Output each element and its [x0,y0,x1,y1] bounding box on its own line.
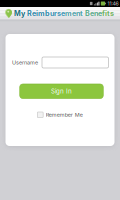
staticText: Reimb [27,9,50,18]
staticText: ment [65,9,85,18]
staticText: Username [12,59,38,66]
staticText: My [14,9,27,18]
staticText: Sign In [51,87,72,95]
staticText: fits [102,9,114,18]
staticText: urse [50,9,65,18]
staticText: 11:46 [107,0,118,7]
button[interactable]: Remember Me [37,111,83,118]
button[interactable]: Sign In [20,84,103,98]
staticText: Remember Me [46,111,83,118]
staticText: Bene [85,9,102,18]
